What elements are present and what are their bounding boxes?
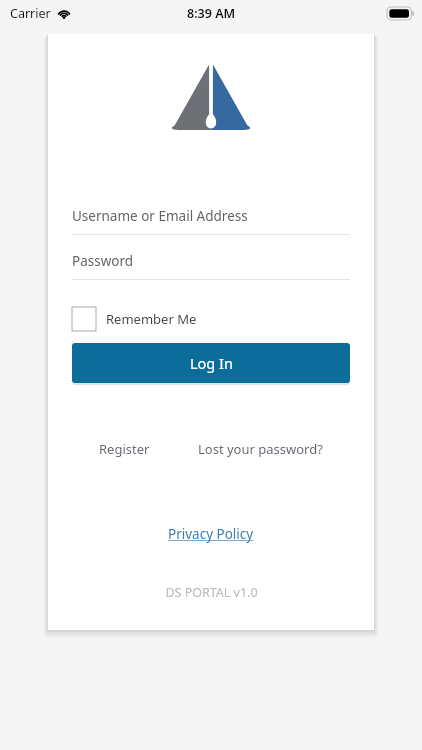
staticText: Register (99, 440, 150, 458)
button[interactable]: Username or Email Address (72, 207, 350, 235)
staticText: DS PORTAL v1.0 (165, 584, 258, 601)
staticText: Password (72, 252, 134, 270)
button[interactable]: Lost your password? (194, 436, 327, 462)
staticText: 8:39 AM (187, 5, 236, 22)
staticText: Remember Me (106, 310, 197, 328)
button[interactable]: Privacy Policy (162, 521, 260, 547)
button[interactable]: Log In (72, 343, 350, 383)
button[interactable]: Password (72, 252, 350, 280)
button[interactable]: Register (95, 436, 154, 462)
other: DS Portal logo (167, 61, 255, 130)
staticText: Lost your password? (198, 440, 323, 458)
staticText: Log In (190, 353, 233, 373)
button[interactable]: Remember Me (72, 305, 197, 333)
staticText: Username or Email Address (72, 207, 248, 225)
staticText: Carrier (10, 5, 51, 22)
staticText: Privacy Policy (168, 525, 254, 543)
